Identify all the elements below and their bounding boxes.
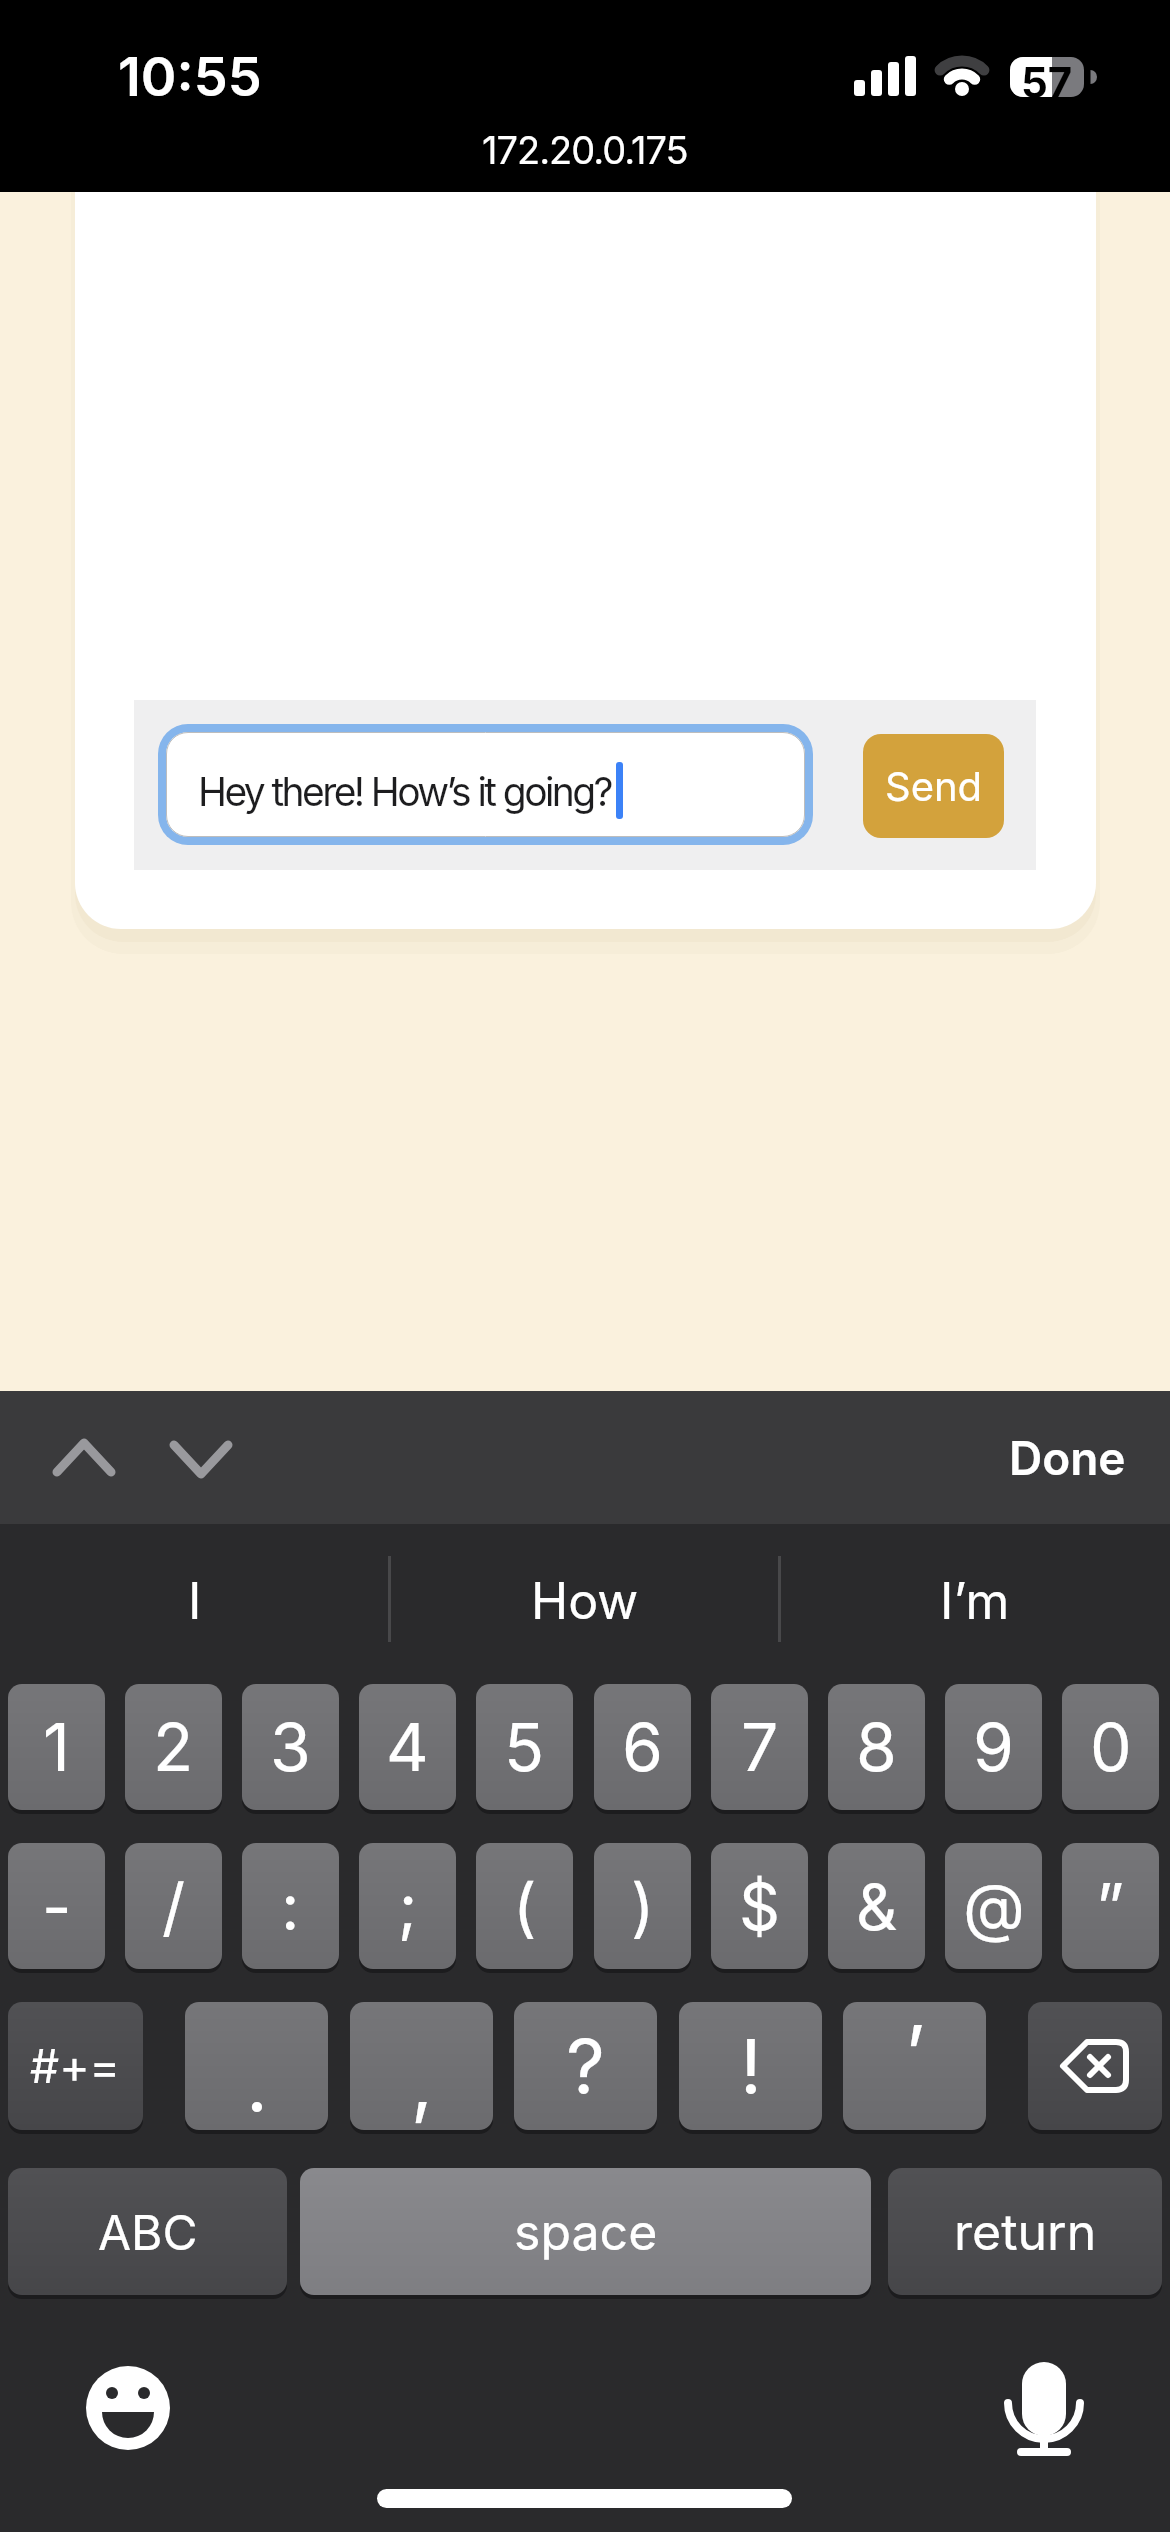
- button[interactable]: 9: [945, 1684, 1042, 1810]
- staticText: 4: [386, 1707, 429, 1787]
- button[interactable]: Send: [863, 734, 1004, 838]
- staticText: #+=: [30, 2038, 121, 2094]
- button[interactable]: [35, 1415, 135, 1505]
- button[interactable]: 5: [476, 1684, 573, 1810]
- button[interactable]: ): [594, 1843, 691, 1969]
- staticText: 6: [622, 1707, 663, 1787]
- button[interactable]: &: [828, 1843, 925, 1969]
- staticText: (: [513, 1868, 537, 1945]
- button[interactable]: 8: [828, 1684, 925, 1810]
- staticText: ,: [411, 2036, 433, 2128]
- staticText: I: [188, 1571, 202, 1631]
- staticText: return: [954, 2202, 1097, 2262]
- button[interactable]: 6: [594, 1684, 691, 1810]
- staticText: ): [631, 1868, 655, 1945]
- staticText: 10:55: [118, 44, 262, 109]
- button[interactable]: 0: [1062, 1684, 1159, 1810]
- staticText: ;: [398, 1868, 418, 1945]
- button[interactable]: I’m: [780, 1548, 1170, 1654]
- button[interactable]: !: [679, 2002, 822, 2130]
- staticText: ABC: [98, 2203, 198, 2261]
- staticText: Send: [885, 762, 983, 810]
- staticText: 9: [973, 1707, 1014, 1787]
- button[interactable]: #+=: [8, 2002, 143, 2130]
- button[interactable]: ”: [1062, 1843, 1159, 1969]
- button[interactable]: space: [300, 2168, 871, 2295]
- button[interactable]: [84, 2364, 172, 2452]
- staticText: 7: [741, 1707, 779, 1787]
- button[interactable]: 1: [8, 1684, 105, 1810]
- staticText: Done: [1009, 1430, 1126, 1486]
- staticText: 1: [43, 1707, 70, 1787]
- staticText: Hey there! How’s it going?: [198, 768, 611, 815]
- staticText: 8: [856, 1707, 897, 1787]
- button[interactable]: How: [390, 1548, 780, 1654]
- staticText: .: [246, 2038, 268, 2130]
- staticText: I’m: [940, 1571, 1010, 1631]
- staticText: !: [740, 2020, 762, 2112]
- button[interactable]: $: [711, 1843, 808, 1969]
- staticText: space: [514, 2202, 658, 2262]
- staticText: 2: [153, 1707, 194, 1787]
- button[interactable]: ,: [350, 2002, 493, 2130]
- button[interactable]: -: [8, 1843, 105, 1969]
- button[interactable]: [150, 1415, 250, 1505]
- button[interactable]: [1000, 2360, 1090, 2456]
- button[interactable]: [1028, 2002, 1162, 2130]
- button[interactable]: 3: [242, 1684, 339, 1810]
- staticText: ?: [566, 2020, 605, 2112]
- button[interactable]: @: [945, 1843, 1042, 1969]
- staticText: 172.20.0.175: [482, 127, 688, 173]
- button[interactable]: return: [888, 2168, 1162, 2295]
- staticText: -: [42, 1868, 72, 1945]
- staticText: 3: [270, 1707, 311, 1787]
- button[interactable]: I: [0, 1548, 390, 1654]
- button[interactable]: ’: [843, 2002, 986, 2130]
- button[interactable]: ;: [359, 1843, 456, 1969]
- staticText: $: [739, 1868, 781, 1945]
- staticText: 57: [1021, 57, 1073, 97]
- staticText: /: [162, 1868, 186, 1945]
- button[interactable]: ?: [514, 2002, 657, 2130]
- staticText: @: [963, 1868, 1025, 1945]
- button[interactable]: (: [476, 1843, 573, 1969]
- button[interactable]: :: [242, 1843, 339, 1969]
- button[interactable]: /: [125, 1843, 222, 1969]
- staticText: ”: [1096, 1868, 1125, 1945]
- staticText: 5: [504, 1707, 545, 1787]
- button[interactable]: ABC: [8, 2168, 287, 2295]
- button[interactable]: 4: [359, 1684, 456, 1810]
- staticText: How: [531, 1571, 639, 1631]
- button[interactable]: 2: [125, 1684, 222, 1810]
- staticText: ’: [905, 2006, 925, 2098]
- button[interactable]: [158, 724, 813, 845]
- button[interactable]: 7: [711, 1684, 808, 1810]
- button[interactable]: .: [185, 2002, 328, 2130]
- staticText: :: [281, 1868, 300, 1945]
- staticText: 0: [1090, 1707, 1132, 1787]
- button[interactable]: Done: [967, 1410, 1167, 1506]
- staticText: &: [856, 1868, 898, 1945]
